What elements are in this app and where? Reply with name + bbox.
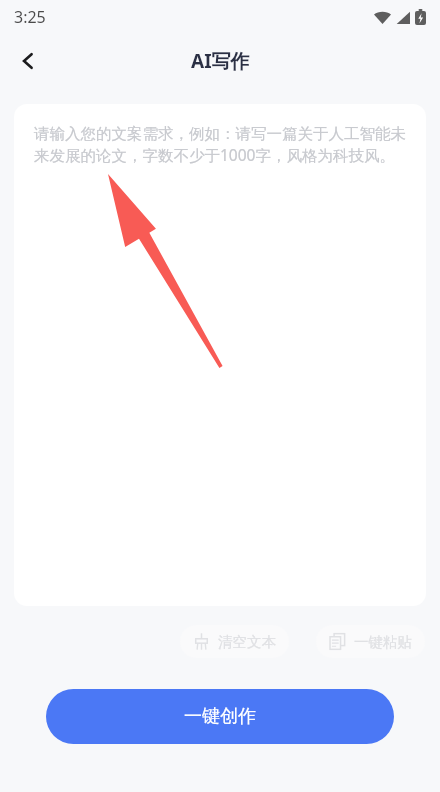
button[interactable]: 清空文本 <box>180 625 289 658</box>
button[interactable]: 一键创作 <box>46 689 394 744</box>
button[interactable]: 请输入您的文案需求，例如：请写一篇关于人工智能未来发展的论文，字数不少于1000… <box>14 104 426 606</box>
staticText: 一键创作 <box>184 705 256 728</box>
button[interactable]: 一键粘贴 <box>316 625 425 658</box>
staticText: AI写作 <box>191 48 250 74</box>
button[interactable]: Back <box>8 41 48 81</box>
staticText: 请输入您的文案需求，例如：请写一篇关于人工智能未来发展的论文，字数不少于1000… <box>34 124 408 166</box>
staticText: 一键粘贴 <box>354 633 412 651</box>
staticText: 清空文本 <box>218 633 276 651</box>
staticText: 3:25 <box>14 6 46 28</box>
